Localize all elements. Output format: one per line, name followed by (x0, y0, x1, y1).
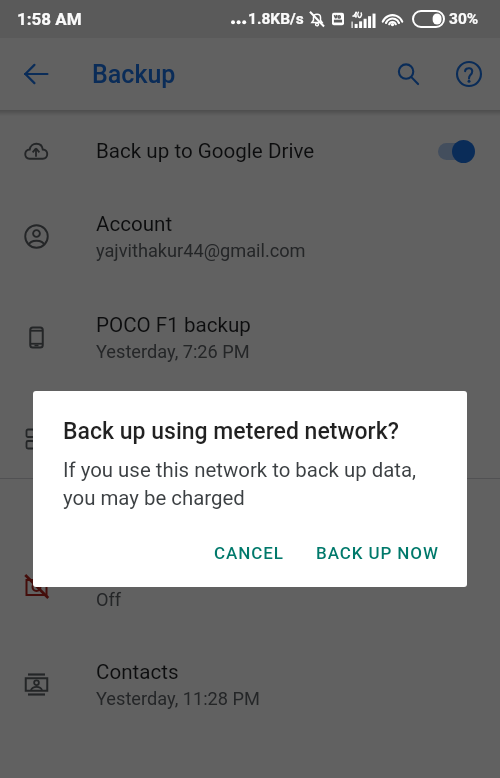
staticText: yajvithakur44@gmail.com (96, 240, 306, 261)
button[interactable]: Contacts (0, 637, 500, 731)
button[interactable]: POCO F1 backup (0, 290, 500, 384)
staticText: Contacts (96, 660, 179, 684)
staticText: 30% (449, 10, 479, 28)
staticText: CANCEL (214, 543, 284, 563)
button[interactable]: Back up to Google Drive (0, 109, 500, 193)
button[interactable]: Search (385, 46, 441, 102)
button[interactable]: Help (441, 46, 497, 102)
staticText: Backup (92, 60, 176, 89)
staticText: App data (96, 415, 179, 439)
staticText: Yesterday, 7:26 PM (96, 443, 250, 464)
staticText: POCO F1 backup (96, 313, 251, 337)
staticText: BACK UP NOW (316, 543, 439, 563)
button[interactable]: Account (0, 192, 500, 280)
button[interactable]: Photos & videos (0, 538, 500, 632)
staticText: Yesterday, 7:26 PM (96, 341, 250, 362)
button[interactable]: App data (0, 392, 500, 486)
staticText: Yesterday, 11:28 PM (96, 688, 260, 709)
button[interactable]: BACK UP NOW (304, 533, 451, 573)
staticText: 1.8KB/s (248, 10, 304, 28)
staticText: Off (96, 589, 122, 610)
button[interactable]: CANCEL (202, 533, 296, 573)
staticText: If you use this network to back up data,… (63, 458, 423, 510)
staticText: Back up to Google Drive (96, 139, 434, 163)
staticText: Back up using metered network? (63, 418, 399, 445)
staticText: Account (96, 212, 173, 236)
button[interactable]: Navigate up (12, 50, 60, 98)
staticText: 1:58 AM (17, 9, 82, 29)
